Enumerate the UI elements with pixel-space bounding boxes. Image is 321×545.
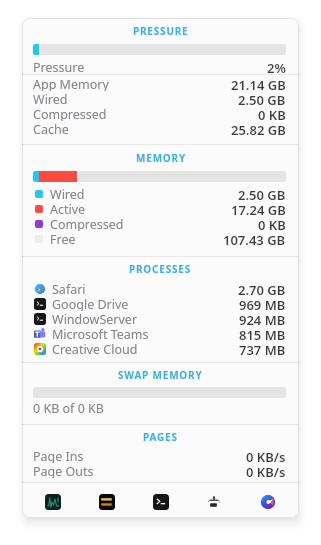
staticText: 21.14 GB	[231, 76, 286, 91]
button[interactable]: Google Drive	[33, 296, 286, 311]
staticText: 737 MB	[239, 341, 286, 356]
staticText: 2.50 GB	[238, 186, 286, 201]
staticText: Wired	[33, 91, 68, 106]
staticText: Active	[50, 201, 86, 216]
staticText: WindowServer	[52, 311, 138, 326]
button[interactable]: Terminal	[153, 494, 169, 510]
staticText: Pressure	[33, 59, 85, 74]
staticText: Page Ins	[33, 448, 84, 463]
staticText: 924 MB	[239, 311, 286, 326]
staticText: Wired	[50, 186, 85, 201]
staticText: Compressed	[50, 216, 124, 231]
staticText: App Memory	[33, 76, 109, 91]
staticText: Compressed	[33, 106, 107, 121]
staticText: 0 KB of 0 KB	[33, 400, 104, 415]
staticText: 2.70 GB	[238, 281, 286, 296]
staticText: Safari	[52, 281, 86, 296]
staticText: SWAP MEMORY	[118, 368, 203, 382]
button[interactable]: System	[206, 494, 222, 510]
staticText: 25.82 GB	[231, 121, 286, 136]
button[interactable]: Microsoft Teams	[33, 326, 286, 341]
staticText: 0 KB/s	[246, 448, 286, 463]
button[interactable]: Creative Cloud	[33, 341, 286, 356]
button[interactable]: Stats	[99, 494, 115, 510]
staticText: 815 MB	[239, 326, 286, 341]
button[interactable]: Browser	[260, 494, 276, 510]
button[interactable]: WindowServer	[33, 311, 286, 326]
staticText: 17.24 GB	[231, 201, 286, 216]
staticText: Microsoft Teams	[52, 326, 149, 341]
staticText: Cache	[33, 121, 69, 136]
staticText: 2.50 GB	[238, 91, 286, 106]
button[interactable]: Activity Monitor	[45, 494, 61, 510]
staticText: Google Drive	[52, 296, 129, 311]
button[interactable]: Safari	[33, 281, 286, 296]
staticText: PROCESSES	[129, 262, 192, 276]
staticText: 969 MB	[239, 296, 286, 311]
staticText: 0 KB/s	[246, 463, 286, 478]
staticText: Page Outs	[33, 463, 94, 478]
staticText: MEMORY	[136, 151, 186, 165]
staticText: 0 KB	[258, 216, 286, 231]
staticText: PRESSURE	[133, 24, 189, 38]
staticText: Creative Cloud	[52, 341, 138, 356]
staticText: 0 KB	[258, 106, 286, 121]
staticText: Free	[50, 231, 76, 246]
staticText: 2%	[267, 59, 286, 74]
staticText: 107.43 GB	[223, 231, 286, 246]
staticText: PAGES	[143, 430, 178, 444]
